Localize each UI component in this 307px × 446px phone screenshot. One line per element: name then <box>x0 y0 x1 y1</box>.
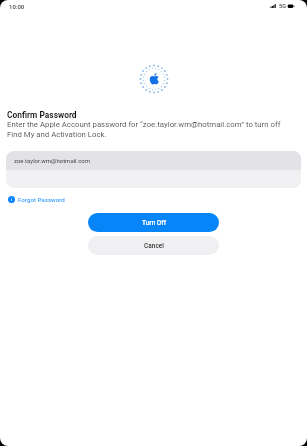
button[interactable]: zoe.taylor.wm@hotmail.com <box>6 151 301 170</box>
staticText: 5G <box>279 3 286 10</box>
staticText: Forgot Password <box>18 196 65 203</box>
staticText: Enter the Apple Account password for “zo… <box>7 120 292 139</box>
button[interactable]: Forgot Password <box>6 194 67 205</box>
staticText: zoe.taylor.wm@hotmail.com <box>14 157 90 164</box>
button[interactable]: Turn Off <box>88 213 219 232</box>
button[interactable]: Cancel <box>88 236 219 255</box>
staticText: Turn Off <box>142 219 166 227</box>
staticText: Cancel <box>144 242 164 250</box>
staticText: 10:00 <box>9 3 25 10</box>
staticText: Confirm Password <box>7 110 77 120</box>
